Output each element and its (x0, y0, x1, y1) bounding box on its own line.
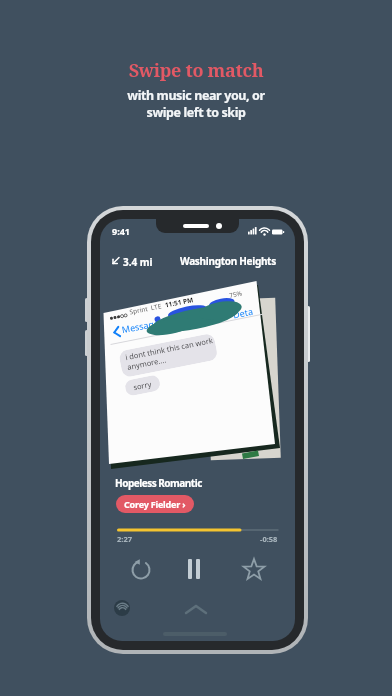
staticText: Sprint LTE (129, 301, 163, 316)
staticText: 2:27 (117, 534, 132, 544)
staticText: 3.4 mi (123, 255, 153, 269)
button[interactable] (185, 605, 207, 614)
staticText: 9:41 (112, 225, 130, 237)
button[interactable]: Corey Fielder › (116, 495, 194, 513)
staticText: 11:51 PM (164, 295, 194, 310)
button[interactable] (188, 559, 200, 579)
staticText: i dont think this can work anymore.... (124, 335, 216, 372)
staticText: -0:58 (260, 534, 278, 544)
button[interactable] (242, 557, 266, 581)
staticText: Hopeless Romantic (115, 476, 202, 490)
staticText: Deta (232, 305, 254, 320)
staticText: Corey Fielder › (124, 498, 186, 510)
staticText: Washington Heights (180, 254, 276, 268)
staticText: with music near you, or swipe left to sk… (0, 87, 392, 121)
button[interactable] (114, 600, 130, 616)
staticText: sorry (132, 379, 153, 392)
button[interactable] (130, 559, 152, 581)
staticText: Messages (121, 315, 164, 335)
staticText: 75% (228, 288, 243, 300)
staticText: Swipe to match (0, 58, 392, 83)
